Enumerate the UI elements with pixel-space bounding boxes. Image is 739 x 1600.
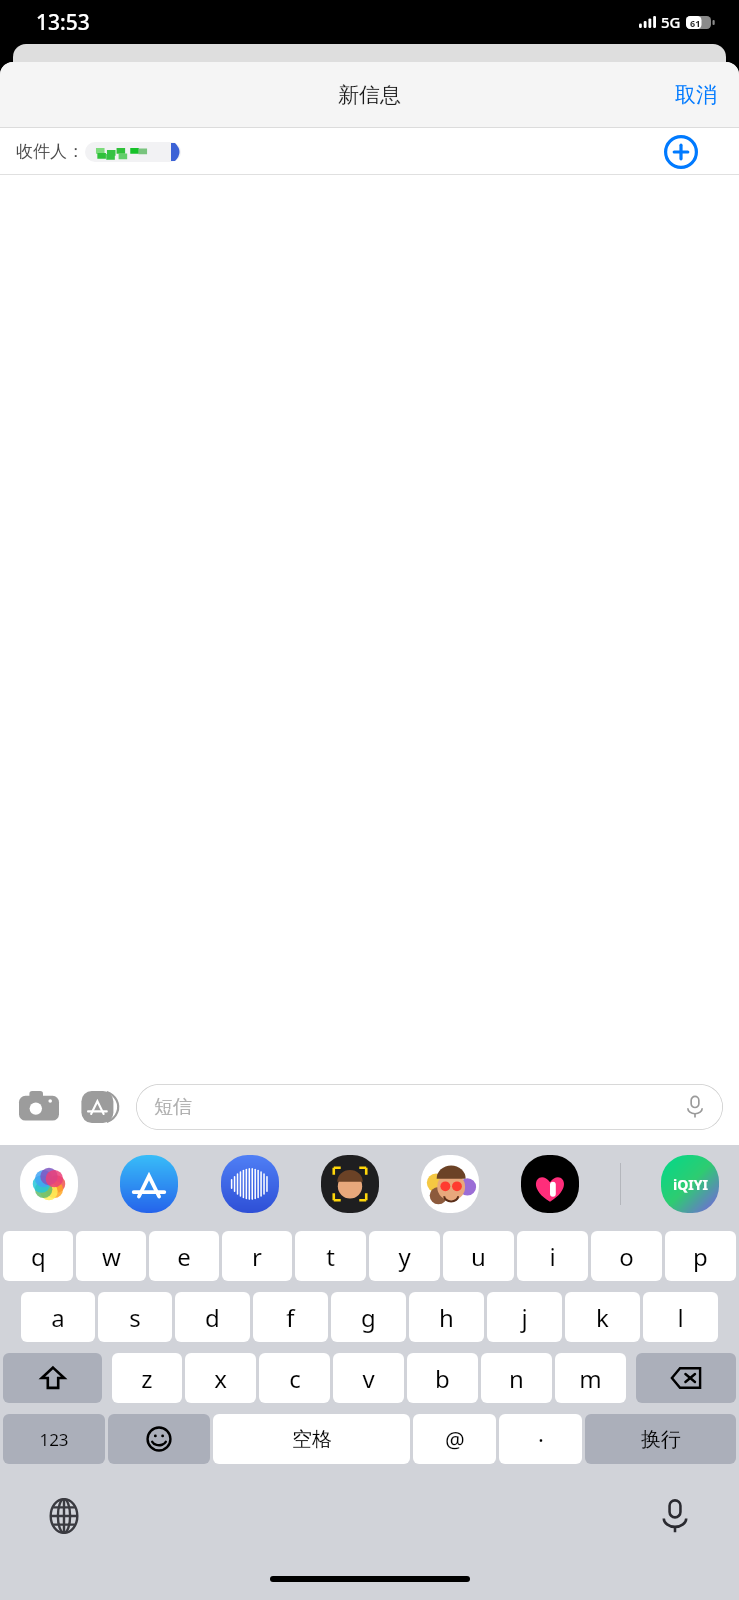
button[interactable]: App Store xyxy=(76,1084,122,1130)
staticText: iQIYI xyxy=(673,1175,708,1194)
button[interactable]: · xyxy=(499,1414,582,1464)
button[interactable]: o xyxy=(591,1231,662,1281)
staticText: l xyxy=(677,1301,684,1334)
staticText: 新信息 xyxy=(338,82,401,108)
button[interactable]: 123 xyxy=(3,1414,105,1464)
staticText: n xyxy=(509,1362,524,1395)
button[interactable]: x xyxy=(185,1353,256,1403)
button[interactable]: n xyxy=(481,1353,552,1403)
staticText: i xyxy=(549,1240,556,1273)
staticText: 收件人： xyxy=(16,141,84,162)
staticText: b xyxy=(435,1362,450,1395)
button[interactable]: j xyxy=(487,1292,562,1342)
button[interactable]: App 0 xyxy=(18,1153,80,1215)
staticText: j xyxy=(521,1301,528,1334)
button[interactable]: Camera xyxy=(16,1084,62,1130)
button[interactable]: g xyxy=(331,1292,406,1342)
button[interactable]: a xyxy=(21,1292,95,1342)
button[interactable]: @ xyxy=(413,1414,496,1464)
button[interactable]: Shift xyxy=(3,1353,102,1403)
button[interactable]: Emoji xyxy=(108,1414,210,1464)
button[interactable]: m xyxy=(555,1353,626,1403)
button[interactable]: c xyxy=(259,1353,330,1403)
staticText: g xyxy=(361,1301,376,1334)
staticText: a xyxy=(51,1301,65,1334)
button[interactable]: e xyxy=(149,1231,219,1281)
staticText: @ xyxy=(445,1424,465,1454)
button[interactable]: l xyxy=(643,1292,718,1342)
staticText: u xyxy=(471,1240,486,1273)
button[interactable]: h xyxy=(409,1292,484,1342)
staticText: 取消 xyxy=(675,82,717,108)
staticText: y xyxy=(398,1240,411,1273)
staticText: 换行 xyxy=(641,1427,681,1452)
button[interactable]: 短信 xyxy=(136,1084,723,1130)
staticText: t xyxy=(326,1240,335,1273)
staticText: h xyxy=(439,1301,454,1334)
button[interactable]: App 4 xyxy=(419,1153,481,1215)
button[interactable]: 取消 xyxy=(653,72,739,118)
staticText: o xyxy=(619,1240,634,1273)
staticText: k xyxy=(596,1301,609,1334)
staticText: · xyxy=(538,1424,544,1454)
staticText: 61 xyxy=(690,17,701,29)
button[interactable]: App 2 xyxy=(219,1153,281,1215)
staticText: 空格 xyxy=(292,1427,332,1452)
staticText: d xyxy=(205,1301,220,1334)
staticText: 13:53 xyxy=(36,8,90,37)
button[interactable]: r xyxy=(222,1231,292,1281)
staticText: 短信 xyxy=(154,1095,192,1119)
button[interactable]: Dictation xyxy=(651,1492,699,1540)
button[interactable]: v xyxy=(333,1353,404,1403)
staticText: r xyxy=(252,1240,262,1273)
button[interactable]: i xyxy=(517,1231,588,1281)
button[interactable]: d xyxy=(175,1292,250,1342)
button[interactable]: p xyxy=(665,1231,736,1281)
button[interactable]: 空格 xyxy=(213,1414,410,1464)
button[interactable]: s xyxy=(98,1292,172,1342)
button[interactable]: App 1 xyxy=(118,1153,180,1215)
button[interactable]: y xyxy=(369,1231,440,1281)
staticText: z xyxy=(141,1362,153,1395)
button[interactable]: Change keyboard xyxy=(40,1492,88,1540)
staticText: p xyxy=(693,1240,708,1273)
staticText: 5G xyxy=(661,12,681,32)
button[interactable]: Add contact xyxy=(659,130,703,174)
button[interactable]: f xyxy=(253,1292,328,1342)
button[interactable]: App 3 xyxy=(319,1153,381,1215)
button[interactable]: t xyxy=(295,1231,366,1281)
staticText: v xyxy=(362,1362,375,1395)
button[interactable]: Backspace xyxy=(636,1353,736,1403)
button[interactable]: q xyxy=(3,1231,73,1281)
staticText: c xyxy=(289,1362,301,1395)
button[interactable]: u xyxy=(443,1231,514,1281)
staticText: w xyxy=(102,1240,121,1273)
staticText: s xyxy=(129,1301,141,1334)
button[interactable]: 换行 xyxy=(585,1414,736,1464)
button[interactable]: w xyxy=(76,1231,146,1281)
button[interactable]: b xyxy=(407,1353,478,1403)
staticText: q xyxy=(31,1240,46,1273)
staticText: 123 xyxy=(39,1428,69,1451)
staticText: x xyxy=(214,1362,227,1395)
button[interactable]: z xyxy=(112,1353,182,1403)
button[interactable]: App 5 xyxy=(519,1153,581,1215)
staticText: f xyxy=(286,1301,295,1334)
staticText: e xyxy=(177,1240,191,1273)
button[interactable]: App 6 xyxy=(659,1153,721,1215)
button[interactable]: k xyxy=(565,1292,640,1342)
staticText: m xyxy=(579,1362,602,1395)
